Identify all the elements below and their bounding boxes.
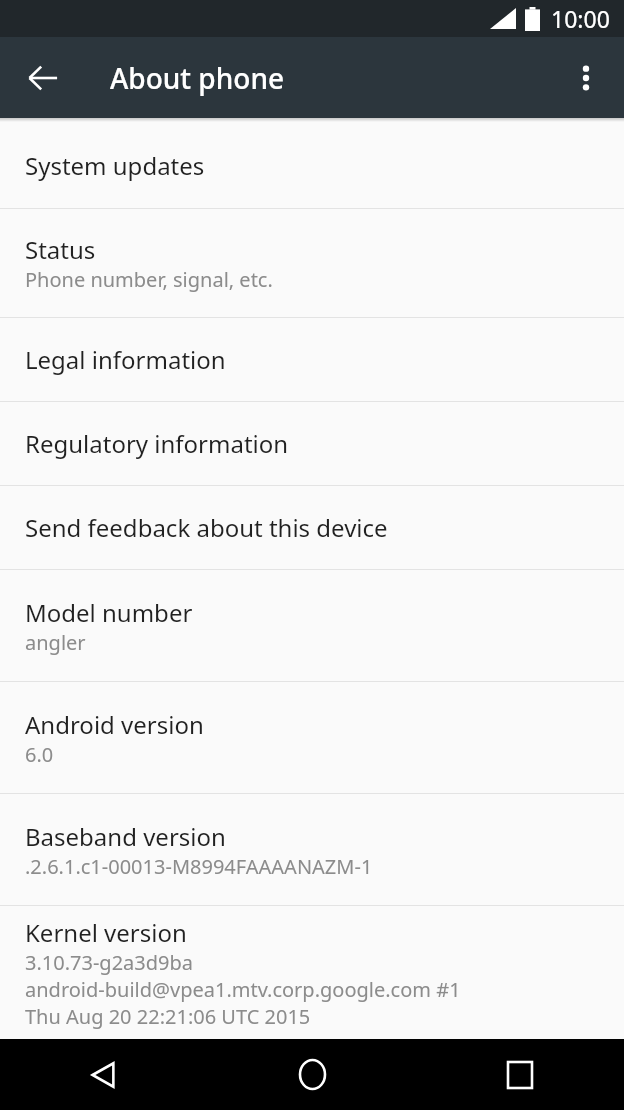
staticText: Regulatory information xyxy=(25,427,289,460)
button[interactable]: Model number xyxy=(0,570,624,681)
staticText: Android version xyxy=(25,708,204,741)
button[interactable]: Back xyxy=(19,54,67,102)
staticText: angler xyxy=(25,629,86,656)
button[interactable]: Home xyxy=(208,1039,416,1110)
button[interactable]: Back xyxy=(0,1039,208,1110)
staticText: Thu Aug 20 22:21:06 UTC 2015 xyxy=(25,1003,311,1030)
button[interactable]: Status xyxy=(0,209,624,317)
button[interactable]: Recent apps xyxy=(416,1039,624,1110)
button[interactable]: Android version xyxy=(0,682,624,793)
staticText: Phone number, signal, etc. xyxy=(25,266,273,293)
staticText: Kernel version xyxy=(25,916,187,949)
staticText: System updates xyxy=(25,149,205,182)
staticText: Baseband version xyxy=(25,820,226,853)
button[interactable]: Kernel version xyxy=(0,906,624,1039)
button[interactable]: Send feedback about this device xyxy=(0,486,624,569)
button[interactable]: More options xyxy=(562,54,610,102)
button[interactable]: Regulatory information xyxy=(0,402,624,485)
button[interactable]: Legal information xyxy=(0,318,624,401)
button[interactable]: System updates xyxy=(0,122,624,208)
staticText: Send feedback about this device xyxy=(25,511,388,544)
staticText: 3.10.73-g2a3d9ba xyxy=(25,949,194,976)
staticText: Legal information xyxy=(25,343,226,376)
staticText: .2.6.1.c1-00013-M8994FAAAANAZM-1 xyxy=(25,853,373,880)
staticText: About phone xyxy=(110,59,285,97)
staticText: 10:00 xyxy=(551,3,610,34)
staticText: Model number xyxy=(25,596,193,629)
staticText: android-build@vpea1.mtv.corp.google.com … xyxy=(25,976,461,1003)
staticText: Status xyxy=(25,233,96,266)
button[interactable]: Baseband version xyxy=(0,794,624,905)
staticText: 6.0 xyxy=(25,741,54,768)
